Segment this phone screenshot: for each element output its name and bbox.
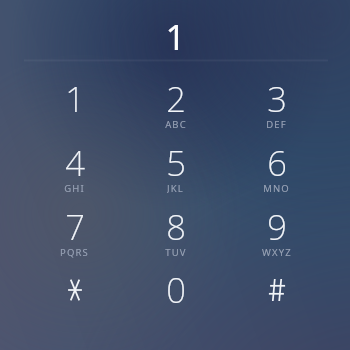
button[interactable]: star <box>24 258 125 321</box>
staticText: 5 <box>166 139 186 186</box>
staticText: DEF <box>266 118 287 130</box>
staticText: 8 <box>166 203 186 250</box>
staticText: WXYZ <box>262 246 292 258</box>
button[interactable]: 9 <box>226 195 327 258</box>
button[interactable]: 2 <box>125 67 226 130</box>
staticText: 1 <box>165 13 186 61</box>
staticText: MNO <box>263 182 290 194</box>
staticText: 4 <box>65 139 85 186</box>
button[interactable]: 5 <box>125 131 226 194</box>
button[interactable]: 8 <box>125 195 226 258</box>
staticText: JKL <box>167 182 184 194</box>
staticText: GHI <box>64 182 85 194</box>
button[interactable]: pound <box>226 258 327 321</box>
staticText: 2 <box>166 75 186 122</box>
staticText: ABC <box>165 118 187 130</box>
button[interactable]: 1 <box>24 67 125 130</box>
staticText: 9 <box>267 203 287 250</box>
staticText: 3 <box>267 75 287 122</box>
staticText: 1 <box>65 75 85 122</box>
staticText: 6 <box>267 139 287 186</box>
staticText: TUV <box>165 246 187 258</box>
button[interactable]: 3 <box>226 67 327 130</box>
button[interactable]: 6 <box>226 131 327 194</box>
button[interactable]: 7 <box>24 195 125 258</box>
button[interactable]: 0 <box>125 258 226 321</box>
button[interactable]: 4 <box>24 131 125 194</box>
staticText: 0 <box>166 266 186 313</box>
staticText: PQRS <box>60 246 89 258</box>
staticText: 7 <box>65 203 85 250</box>
